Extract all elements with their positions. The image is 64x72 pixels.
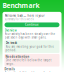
staticText: Review the full breakdown of each catego… (4, 71, 54, 72)
button[interactable]: Continue (4, 22, 59, 27)
staticText: Needs attention (5, 55, 29, 58)
staticText: Your activity has been steady over the p… (4, 32, 55, 39)
staticText: Details (4, 68, 14, 71)
staticText: Welcome back — here is your (4, 14, 44, 17)
staticText: Continue (25, 23, 39, 26)
staticText: One metric fell below the target range. (5, 58, 51, 66)
staticText: You are meeting your goal for this perio… (5, 45, 53, 52)
staticText: summary for this week (4, 17, 33, 21)
staticText: Benchmark (2, 1, 39, 10)
staticText: Overview (4, 29, 16, 32)
staticText: On track (5, 41, 17, 45)
